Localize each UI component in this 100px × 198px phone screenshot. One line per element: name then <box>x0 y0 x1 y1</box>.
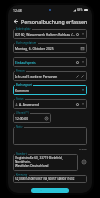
staticText: 52,03801450815867158,5085714880311602 <box>15 177 75 181</box>
button[interactable]: Auswahl öffnen <box>81 102 85 106</box>
staticText: Ich und 5 weitere Personen <box>15 74 75 78</box>
button[interactable]: Löschen <box>75 102 80 107</box>
staticText: 12:48 <box>13 8 22 13</box>
button[interactable]: Übermitteln <box>31 188 69 193</box>
staticText: 82160, Wasserwerk Haltern Rohbau / S… <box>15 32 75 36</box>
staticText: Arbeitsplatz <box>16 27 31 31</box>
staticText: Einkaufspreis <box>15 60 75 64</box>
staticText: Buchungsdatum <box>16 41 37 45</box>
button[interactable]: Bearbeiten <box>80 74 85 79</box>
staticText: A. Anwesend <box>19 102 75 106</box>
button[interactable]: Auswahl öffnen <box>81 32 85 36</box>
button[interactable] <box>13 127 87 145</box>
staticText: Notiz <box>16 125 23 129</box>
button[interactable]: Vogteistraße 60, 33719 Bielefeld, Nordrh… <box>13 154 78 171</box>
button[interactable]: Kommen <box>13 85 87 95</box>
staticText: Montag, 6. Oktober 2025 <box>15 46 80 50</box>
button[interactable]: Montag, 6. Oktober 2025 <box>13 43 87 53</box>
button[interactable]: 52,03801450815867158,5085714880311602 <box>13 175 87 183</box>
staticText: 68% <box>77 8 83 12</box>
staticText: 0/4000 <box>79 147 87 150</box>
button[interactable]: Einkaufspreis <box>13 57 87 67</box>
button[interactable]: Löschen <box>75 32 80 37</box>
staticText: Person <box>16 69 25 73</box>
button[interactable]: Löschen <box>75 60 80 65</box>
button[interactable]: Auswahl öffnen <box>81 60 85 64</box>
button[interactable]: Auswahl öffnen <box>81 88 85 92</box>
staticText: Vogteistraße 60, 33719 Bielefeld, Nordrh… <box>15 156 76 168</box>
button[interactable]: Ich und 5 weitere Personen <box>13 71 87 81</box>
button[interactable]: 12:00:00 <box>13 113 51 123</box>
button[interactable]: Uhrzeit wählen <box>44 116 49 121</box>
button[interactable]: Datum wählen <box>80 46 85 51</box>
button[interactable]: 82160, Wasserwerk Haltern Rohbau / S… <box>13 29 87 39</box>
staticText: Standort <box>16 152 27 156</box>
staticText: Uhrzeit (*) <box>16 111 29 115</box>
staticText: Übermitteln <box>40 190 60 191</box>
staticText: Personalbuchung erfassen <box>21 18 88 25</box>
staticText: Kommen <box>15 88 80 92</box>
staticText: Status <box>16 97 24 101</box>
staticText: Buchungsart <box>16 83 32 87</box>
button[interactable]: Zurück <box>11 17 20 26</box>
staticText: Kennung <box>16 173 28 177</box>
button[interactable]: Anhängen <box>75 74 80 79</box>
button[interactable]: A. Anwesend <box>13 99 87 109</box>
staticText: 12:00:00 <box>15 116 44 120</box>
button[interactable]: Standort aktualisieren <box>80 158 87 165</box>
